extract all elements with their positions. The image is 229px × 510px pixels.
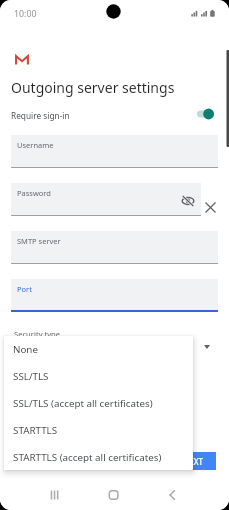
button[interactable]: Recents xyxy=(27,480,67,510)
staticText: SSL/TLS (accept all certificates) xyxy=(13,397,153,410)
staticText: NEXT xyxy=(183,456,204,467)
button[interactable]: Password xyxy=(11,183,201,216)
staticText: Port xyxy=(17,284,32,294)
button[interactable]: None xyxy=(4,336,193,363)
button[interactable]: Clear xyxy=(200,197,220,217)
button[interactable]: Home xyxy=(95,480,135,510)
staticText: SSL/TLS xyxy=(13,370,49,383)
button[interactable]: Port xyxy=(11,279,218,312)
button[interactable]: SSL/TLS (accept all certificates) xyxy=(4,390,193,417)
button[interactable]: Back xyxy=(162,480,202,510)
staticText: Security type xyxy=(14,329,61,339)
button[interactable]: STARTTLS (accept all certificates) xyxy=(4,444,193,470)
staticText: Password xyxy=(17,188,51,198)
button[interactable]: STARTTLS xyxy=(4,417,193,444)
staticText: Outgoing server settings xyxy=(11,78,175,97)
button[interactable]: SSL/TLS xyxy=(4,363,193,390)
button[interactable]: Show password xyxy=(178,191,198,211)
button[interactable]: Security type xyxy=(0,327,229,360)
button[interactable]: Require sign-in toggle xyxy=(190,104,224,124)
button[interactable]: Username xyxy=(11,135,218,168)
staticText: Username xyxy=(17,140,54,150)
staticText: STARTTLS (accept all certificates) xyxy=(13,451,162,464)
staticText: 10:00 xyxy=(14,8,37,20)
staticText: Require sign-in xyxy=(11,110,70,121)
staticText: None xyxy=(13,343,38,356)
button[interactable]: SMTP server xyxy=(11,231,218,264)
button[interactable]: NEXT xyxy=(170,452,216,470)
staticText: SMTP server xyxy=(17,236,61,246)
staticText: STARTTLS xyxy=(13,424,58,437)
